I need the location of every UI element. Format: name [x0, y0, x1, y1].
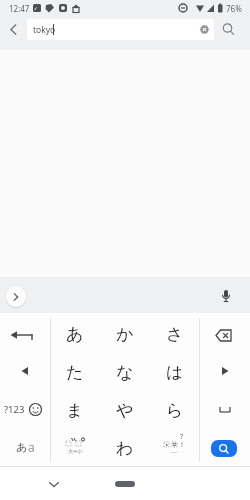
button[interactable] [0, 314, 50, 352]
staticText: ま [66, 400, 84, 421]
button[interactable]: さ [150, 314, 200, 352]
button[interactable]: ま [50, 390, 100, 428]
button[interactable]: は [150, 352, 200, 390]
button[interactable]: た [50, 352, 100, 390]
staticText: や [116, 400, 134, 421]
button[interactable]: ?123 [0, 390, 50, 428]
staticText: あ [66, 324, 84, 345]
button[interactable]: ? [150, 428, 200, 466]
staticText: ? [180, 432, 184, 442]
button[interactable]: な [100, 352, 150, 390]
button[interactable]: あ [0, 428, 50, 466]
button[interactable]: や [100, 390, 150, 428]
button[interactable] [44, 474, 64, 494]
button[interactable] [219, 20, 238, 39]
button[interactable] [4, 285, 28, 309]
button[interactable]: ら [150, 390, 200, 428]
staticText: ! [181, 440, 183, 450]
staticText: か [116, 324, 134, 345]
staticText: a [28, 439, 35, 455]
staticText: あ [16, 440, 28, 454]
button[interactable]: わ [100, 428, 150, 466]
button[interactable] [4, 20, 23, 39]
button[interactable]: あ [50, 314, 100, 352]
button[interactable] [211, 440, 237, 457]
staticText: さ [166, 324, 184, 345]
button[interactable]: tokyo [27, 19, 214, 40]
staticText: ら [166, 400, 184, 421]
button[interactable]: 大⇔小 [50, 428, 100, 466]
button[interactable] [217, 288, 235, 306]
staticText: tokyo [33, 24, 56, 36]
button[interactable] [200, 352, 250, 390]
staticText: わ [116, 438, 134, 459]
staticText: な [116, 362, 134, 383]
button[interactable] [200, 390, 250, 428]
button[interactable] [115, 481, 135, 487]
button[interactable] [0, 352, 50, 390]
button[interactable] [200, 314, 250, 352]
staticText: 76% [226, 3, 242, 14]
staticText: ?123 [4, 403, 25, 416]
staticText: た [66, 362, 84, 383]
button[interactable]: か [100, 314, 150, 352]
staticText: 大⇔小 [68, 448, 83, 454]
staticText: 12:47 [9, 3, 30, 14]
staticText: は [166, 362, 184, 383]
